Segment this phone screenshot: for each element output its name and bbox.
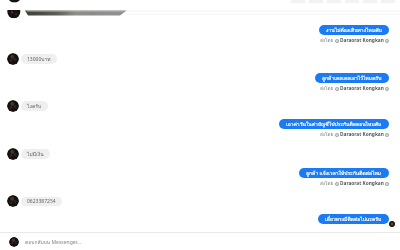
staticText: Daraorat Kongkan xyxy=(340,180,384,187)
button[interactable]: 0623387254 xyxy=(21,197,62,206)
button[interactable]: 13000บาท xyxy=(21,54,57,64)
button[interactable]: Open profile xyxy=(7,148,19,160)
staticText: Daraorat Kongkan xyxy=(340,85,384,92)
staticText: Daraorat Kongkan xyxy=(340,37,384,44)
staticText: 13000บาท xyxy=(27,55,51,63)
button[interactable]: ลูกค้า แจ้งเวลาให้ประกันติดต่อไหม xyxy=(299,168,389,178)
staticText: ไงครับ xyxy=(27,102,42,110)
staticText: ส่งโดย xyxy=(320,180,334,187)
button[interactable]: Your profile xyxy=(9,237,19,247)
staticText: ส่งโดย xyxy=(320,37,334,44)
button[interactable]: Your profile xyxy=(0,233,400,250)
staticText: งานไม่ต้องเดินทางไหมคับ xyxy=(326,26,382,34)
staticText: Daraorat Kongkan xyxy=(340,131,384,138)
button[interactable]: ลูกค้าเคยเคยเอาไว้ไหมครับ xyxy=(315,73,389,83)
staticText: ไม่มีเงิน xyxy=(27,150,44,158)
button[interactable]: Open profile xyxy=(7,53,19,65)
button[interactable]: งานไม่ต้องเดินทางไหมคับ xyxy=(319,25,389,35)
button[interactable]: Open profile xyxy=(7,195,19,207)
button[interactable]: ไม่มีเงิน xyxy=(21,149,50,159)
button[interactable]: Open profile xyxy=(7,100,19,112)
button[interactable]: เอาค่าวันในค่าบัญชีไปประกันติดตอนไหมคับ xyxy=(279,119,389,129)
button[interactable]: ไงครับ xyxy=(21,101,48,111)
staticText: ตอบกลับบน Messenger... xyxy=(25,238,81,246)
staticText: เอาค่าวันในค่าบัญชีไปประกันติดตอนไหมคับ xyxy=(286,120,382,128)
staticText: ส่งโดย xyxy=(320,85,334,92)
staticText: 0623387254 xyxy=(27,198,56,205)
staticText: ลูกค้า แจ้งเวลาให้ประกันติดต่อไหม xyxy=(306,169,382,177)
staticText: ส่งโดย xyxy=(320,131,334,138)
staticText: ลูกค้าเคยเคยเอาไว้ไหมครับ xyxy=(322,74,382,82)
button[interactable]: เดี๋ยวทรงมีติดต่อไปนะครับ xyxy=(318,214,389,224)
staticText: เดี๋ยวทรงมีติดต่อไปนะครับ xyxy=(325,215,382,223)
